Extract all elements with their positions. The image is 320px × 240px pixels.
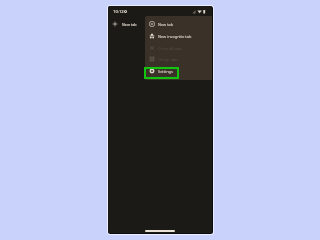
other: New tab [112, 21, 118, 27]
staticText: New tab [158, 22, 174, 27]
button[interactable]: New tab [149, 18, 212, 30]
staticText: Close all tabs [158, 46, 182, 51]
button[interactable]: Close all tabs [149, 42, 212, 54]
staticText: New tab [122, 22, 137, 27]
staticText: 10:12 [113, 9, 124, 15]
button[interactable]: Group tabs [149, 53, 212, 65]
button[interactable]: New incognito tab [149, 30, 212, 42]
staticText: Group tabs [158, 57, 179, 62]
staticText: New incognito tab [158, 34, 192, 39]
button[interactable]: Settings [149, 65, 212, 77]
staticText: Settings [158, 69, 173, 74]
button[interactable]: New tab [112, 16, 148, 32]
